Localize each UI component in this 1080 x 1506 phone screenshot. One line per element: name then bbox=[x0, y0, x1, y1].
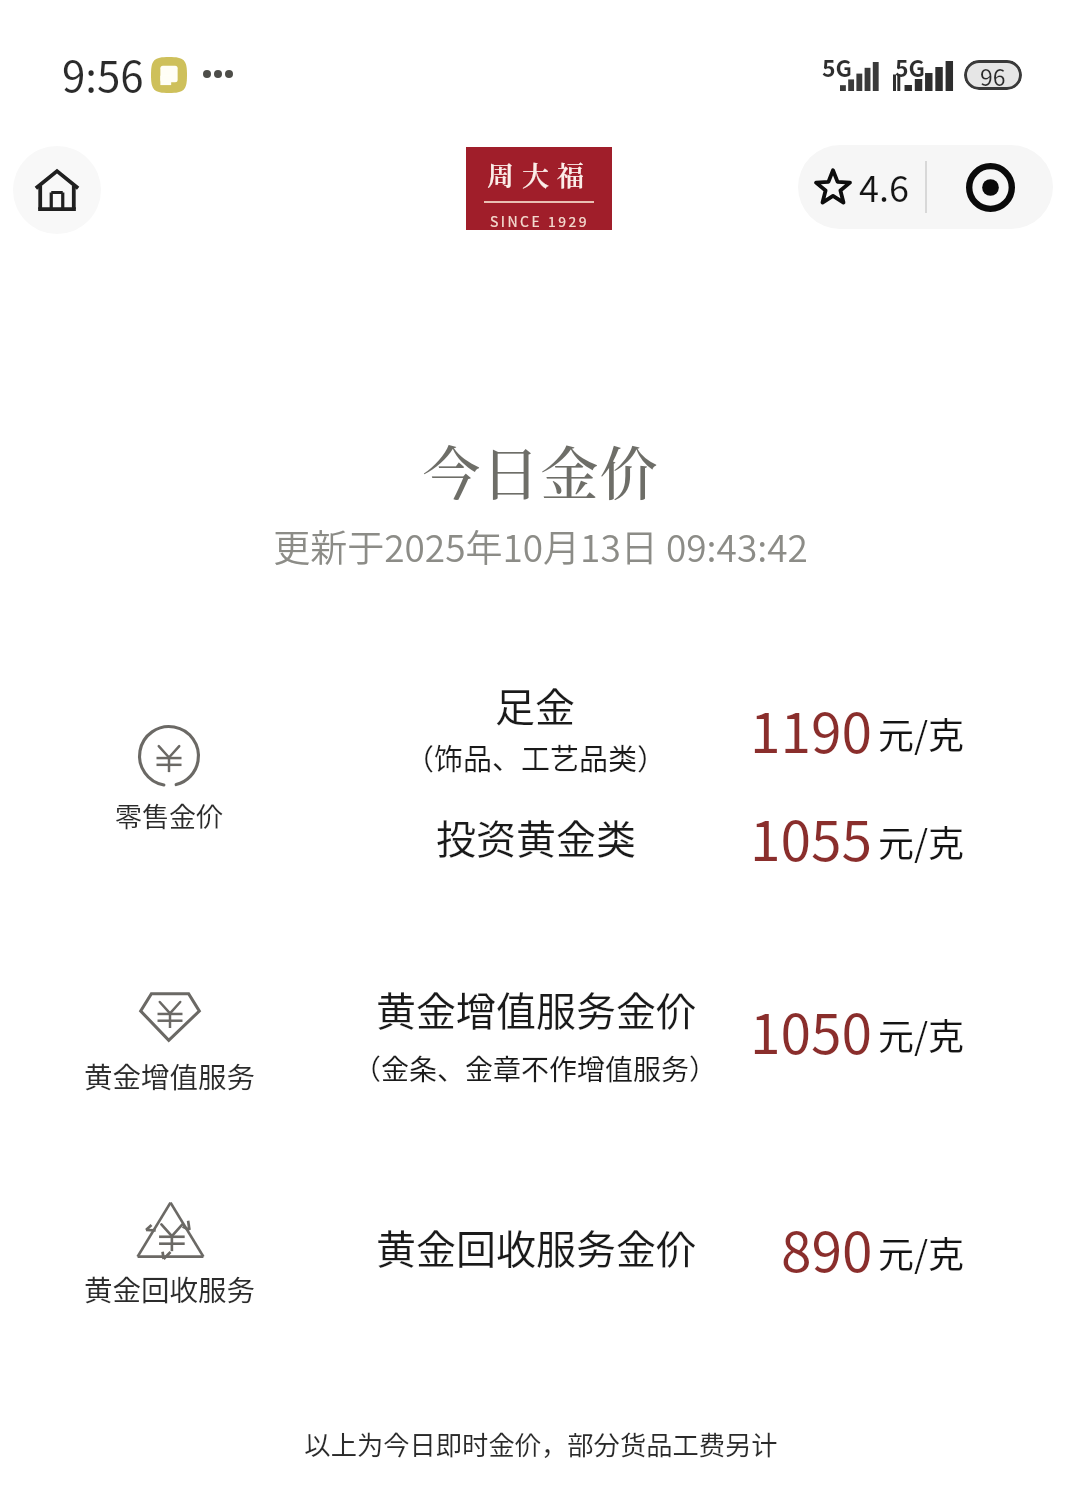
button[interactable]: Home bbox=[13, 146, 101, 234]
staticText: 1050 bbox=[750, 990, 873, 1070]
staticText: 黄金增值服务 bbox=[84, 1055, 256, 1096]
staticText: 今日金价 bbox=[422, 428, 659, 511]
staticText: （饰品、工艺品类） bbox=[405, 736, 667, 778]
button[interactable]: 4.6 bbox=[798, 145, 925, 229]
staticText: 5G bbox=[822, 50, 853, 83]
staticText: 元/克 bbox=[878, 1226, 965, 1278]
button[interactable]: Record bbox=[927, 145, 1053, 229]
button[interactable]: 黄金回收服务 bbox=[20, 1201, 320, 1309]
staticText: 元/克 bbox=[878, 707, 965, 759]
staticText: 以上为今日即时金价，部分货品工费另计 bbox=[304, 1424, 778, 1462]
staticText: 黄金回收服务 bbox=[84, 1268, 256, 1309]
staticText: 890 bbox=[781, 1208, 873, 1288]
button[interactable]: 零售金价 bbox=[19, 725, 319, 835]
staticText: 96 bbox=[980, 60, 1006, 89]
button[interactable]: 黄金增值服务 bbox=[20, 992, 320, 1096]
staticText: 9:56 bbox=[62, 43, 144, 104]
staticText: 1055 bbox=[750, 797, 873, 877]
staticText: 投资黄金类 bbox=[436, 808, 636, 866]
staticText: 1190 bbox=[750, 689, 873, 769]
staticText: 4.6 bbox=[859, 160, 909, 212]
staticText: （金条、金章不作增值服务） bbox=[353, 1048, 718, 1089]
staticText: SINCE 1929 bbox=[490, 211, 589, 230]
button[interactable]: 周大福 bbox=[466, 147, 612, 230]
staticText: 零售金价 bbox=[115, 796, 223, 835]
staticText: 足金 bbox=[495, 676, 575, 734]
staticText: 黄金增值服务金价 bbox=[376, 980, 696, 1038]
staticText: 周大福 bbox=[487, 155, 592, 194]
staticText: 黄金回收服务金价 bbox=[376, 1218, 696, 1276]
staticText: 元/克 bbox=[878, 815, 965, 867]
staticText: 5G bbox=[895, 50, 926, 83]
staticText: 元/克 bbox=[878, 1008, 965, 1060]
staticText: 更新于2025年10月13日 09:43:42 bbox=[273, 519, 808, 573]
